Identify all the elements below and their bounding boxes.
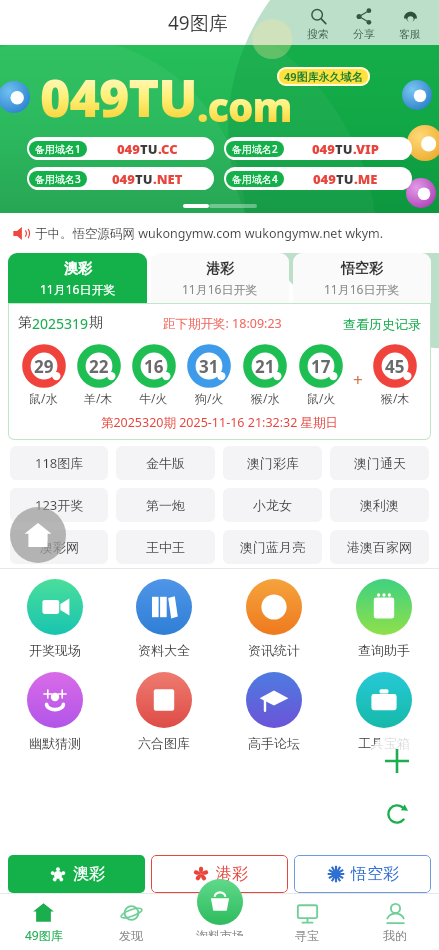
staticText: 22 xyxy=(89,355,109,378)
button[interactable]: 寻宝 xyxy=(263,902,351,950)
staticText: .CC xyxy=(158,140,178,158)
button[interactable]: 17 xyxy=(293,344,349,406)
staticText: 发现 xyxy=(119,928,143,943)
staticText: TU xyxy=(335,140,353,158)
button[interactable]: 21 xyxy=(237,344,293,406)
staticText: 11月16日开奖 xyxy=(324,281,400,297)
button[interactable]: 淘料市场 xyxy=(196,879,244,936)
button[interactable]: 幽默猜测 xyxy=(0,672,109,751)
button[interactable]: 王中王 xyxy=(116,530,215,564)
staticText: 羊/木 xyxy=(84,390,113,406)
button[interactable]: Home xyxy=(10,507,66,563)
button[interactable]: 六合图库 xyxy=(109,672,219,751)
button[interactable]: 分享 xyxy=(341,5,387,41)
button[interactable]: 金牛版 xyxy=(116,446,215,480)
staticText: 澳利澳 xyxy=(360,497,399,513)
button[interactable]: 查看历史记录 xyxy=(343,316,421,332)
button[interactable]: 备用域名4 xyxy=(224,167,412,190)
button[interactable]: 港彩 xyxy=(151,253,289,303)
button[interactable]: 049TU xyxy=(0,45,439,213)
button[interactable]: 第一炮 xyxy=(116,488,215,522)
button[interactable]: 45 xyxy=(367,344,423,406)
staticText: 11月16日开奖 xyxy=(182,281,258,297)
staticText: 鼠/水 xyxy=(29,390,58,406)
button[interactable]: 澳彩 xyxy=(8,855,145,893)
staticText: 第一炮 xyxy=(146,497,185,513)
button[interactable]: 49图库 xyxy=(0,901,87,950)
staticText: .ME xyxy=(354,170,378,188)
staticText: 分享 xyxy=(353,27,375,41)
staticText: 118图库 xyxy=(35,454,84,472)
button[interactable]: 澳彩网 xyxy=(10,530,108,564)
button[interactable]: 悟空彩 xyxy=(294,855,431,893)
staticText: 049 xyxy=(313,170,336,188)
staticText: 六合图库 xyxy=(138,735,190,751)
button[interactable]: 资料大全 xyxy=(109,579,219,658)
button[interactable]: 22 xyxy=(71,344,126,406)
staticText: 123开奖 xyxy=(35,496,84,514)
button[interactable]: 16 xyxy=(126,344,181,406)
staticText: 17 xyxy=(311,355,331,378)
button[interactable]: 查询助手 xyxy=(329,579,439,658)
button[interactable]: 29 xyxy=(16,344,71,406)
staticText: 49图库 xyxy=(168,10,228,36)
staticText: 备用域名1 xyxy=(35,142,81,156)
staticText: 开奖现场 xyxy=(29,642,81,658)
staticText: 备用域名2 xyxy=(232,142,278,156)
button[interactable]: 备用域名2 xyxy=(224,137,412,160)
staticText: 备用域名4 xyxy=(232,172,278,186)
button[interactable]: 于中。悟空源码网 wukongymw.com wukongymw.net wky… xyxy=(0,213,439,253)
staticText: 2025319 xyxy=(32,314,89,333)
staticText: 搜索 xyxy=(307,27,329,41)
staticText: 澳门彩库 xyxy=(247,455,299,471)
button[interactable]: 发现 xyxy=(87,902,175,950)
button[interactable]: 港澳百家网 xyxy=(330,530,429,564)
button[interactable]: 118图库 xyxy=(10,446,108,480)
staticText: 29 xyxy=(34,355,54,378)
button[interactable]: Add xyxy=(369,733,425,789)
staticText: 高手论坛 xyxy=(248,735,300,751)
button[interactable]: 港彩 xyxy=(151,855,288,893)
staticText: 猴/木 xyxy=(381,390,410,406)
button[interactable]: 澳门彩库 xyxy=(223,446,322,480)
button[interactable]: 备用域名3 xyxy=(27,167,214,190)
button[interactable]: 工具宝箱 xyxy=(329,672,439,751)
staticText: 45 xyxy=(385,355,405,378)
button[interactable]: 客服 xyxy=(387,5,433,41)
staticText: 王中王 xyxy=(146,539,185,555)
staticText: 客服 xyxy=(399,27,421,41)
staticText: 猴/水 xyxy=(251,390,280,406)
button[interactable]: 开奖现场 xyxy=(0,579,109,658)
button[interactable]: 我的 xyxy=(351,902,439,950)
staticText: 资料大全 xyxy=(138,642,190,658)
button[interactable]: 澳利澳 xyxy=(330,488,429,522)
staticText: 11月16日开奖 xyxy=(40,281,116,297)
staticText: 049 xyxy=(112,170,135,188)
staticText: 幽默猜测 xyxy=(29,735,81,751)
button[interactable]: 备用域名1 xyxy=(27,137,214,160)
staticText: .VIP xyxy=(353,140,379,158)
staticText: 第2025320期 2025-11-16 21:32:32 星期日 xyxy=(8,414,431,431)
button[interactable]: Refresh xyxy=(369,786,425,842)
button[interactable]: 31 xyxy=(181,344,237,406)
staticText: 悟空彩 xyxy=(341,260,383,278)
staticText: 小龙女 xyxy=(253,497,292,513)
staticText: 澳彩网 xyxy=(40,539,79,555)
button[interactable]: 高手论坛 xyxy=(219,672,329,751)
staticText: TU xyxy=(336,170,354,188)
staticText: 寻宝 xyxy=(295,928,319,943)
staticText: 49图库 xyxy=(25,927,63,943)
staticText: TU xyxy=(135,170,153,188)
button[interactable]: 澳门蓝月亮 xyxy=(223,530,322,564)
staticText: 牛/火 xyxy=(139,390,168,406)
staticText: 49图库永久域名 xyxy=(284,69,363,84)
button[interactable]: 澳门通天 xyxy=(330,446,429,480)
button[interactable]: 123开奖 xyxy=(10,488,108,522)
button[interactable]: 小龙女 xyxy=(223,488,322,522)
button[interactable]: 澳彩 xyxy=(8,253,147,303)
staticText: 澳门蓝月亮 xyxy=(240,539,305,555)
staticText: 我的 xyxy=(383,928,407,943)
button[interactable]: 资讯统计 xyxy=(219,579,329,658)
button[interactable]: 搜索 xyxy=(295,5,341,41)
button[interactable]: 悟空彩 xyxy=(293,253,431,303)
